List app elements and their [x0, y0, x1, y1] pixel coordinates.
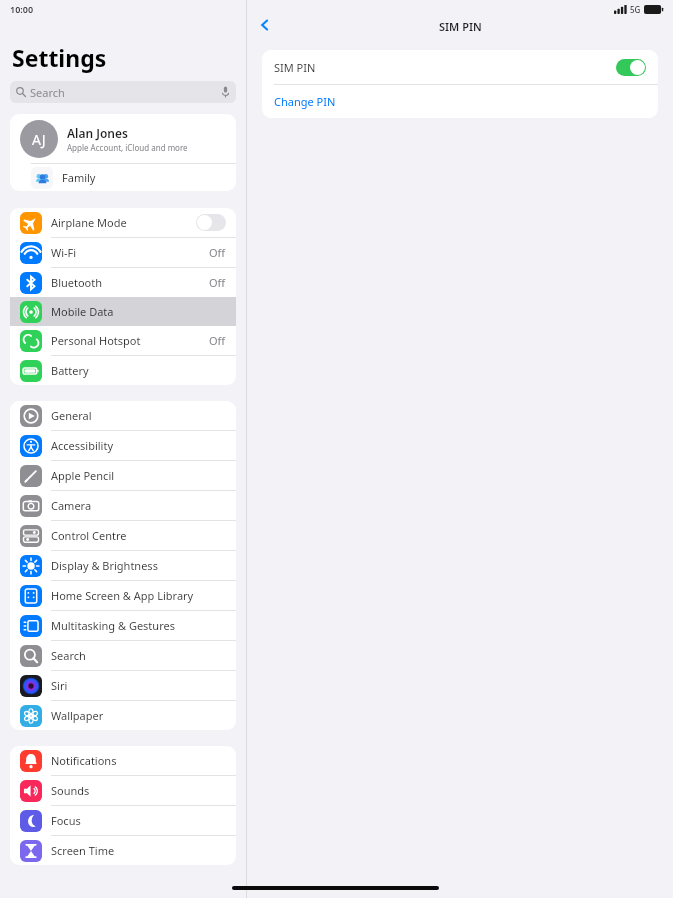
button[interactable]: Search: [10, 641, 236, 670]
button[interactable]: Accessibility: [10, 431, 236, 460]
staticText: 10:00: [10, 3, 34, 15]
button[interactable]: [196, 214, 226, 231]
staticText: Notifications: [51, 753, 117, 768]
staticText: Off: [209, 275, 226, 290]
staticText: Display & Brightness: [51, 558, 158, 573]
button[interactable]: Camera: [10, 491, 236, 520]
staticText: Off: [209, 245, 226, 260]
button[interactable]: Personal Hotspot: [10, 326, 236, 355]
staticText: Search: [51, 648, 86, 663]
button[interactable]: Back: [251, 11, 279, 39]
staticText: Battery: [51, 363, 89, 378]
staticText: Apple Pencil: [51, 468, 115, 483]
staticText: Siri: [51, 678, 68, 693]
button[interactable]: General: [10, 401, 236, 430]
button[interactable]: Multitasking & Gestures: [10, 611, 236, 640]
button[interactable]: Control Centre: [10, 521, 236, 550]
button[interactable]: Airplane Mode: [10, 208, 236, 237]
staticText: Sounds: [51, 783, 90, 798]
button[interactable]: Family: [10, 164, 236, 191]
button[interactable]: Mobile Data: [10, 297, 236, 326]
staticText: Apple Account, iCloud and more: [67, 142, 188, 153]
button[interactable]: Search: [10, 81, 236, 103]
staticText: Bluetooth: [51, 275, 103, 290]
staticText: Alan Jones: [67, 125, 128, 141]
button[interactable]: Wi-Fi: [10, 238, 236, 267]
staticText: Camera: [51, 498, 92, 513]
staticText: SIM PIN: [274, 60, 316, 75]
staticText: Off: [209, 333, 226, 348]
button[interactable]: Display & Brightness: [10, 551, 236, 580]
button[interactable]: Notifications: [10, 746, 236, 775]
staticText: AJ: [32, 130, 46, 149]
staticText: Search: [30, 85, 65, 100]
button[interactable]: SIM PIN: [262, 50, 658, 84]
button[interactable]: Bluetooth: [10, 268, 236, 297]
staticText: Airplane Mode: [51, 215, 127, 230]
button[interactable]: Wallpaper: [10, 701, 236, 730]
button[interactable]: Screen Time: [10, 836, 236, 865]
staticText: Home Screen & App Library: [51, 588, 194, 603]
button[interactable]: Focus: [10, 806, 236, 835]
button[interactable]: Change PIN: [262, 85, 658, 118]
staticText: Family: [62, 170, 96, 185]
staticText: Wallpaper: [51, 708, 104, 723]
staticText: Accessibility: [51, 438, 114, 453]
staticText: Personal Hotspot: [51, 333, 141, 348]
button[interactable]: Sounds: [10, 776, 236, 805]
staticText: Settings: [12, 42, 107, 73]
staticText: SIM PIN: [439, 19, 482, 34]
button[interactable]: Battery: [10, 356, 236, 385]
button[interactable]: Home Screen & App Library: [10, 581, 236, 610]
staticText: Screen Time: [51, 843, 115, 858]
staticText: 5G: [630, 4, 641, 15]
staticText: General: [51, 408, 92, 423]
button[interactable]: AJ: [10, 114, 236, 163]
button[interactable]: [616, 59, 646, 76]
staticText: Mobile Data: [51, 304, 114, 319]
staticText: Wi-Fi: [51, 245, 77, 260]
button[interactable]: Siri: [10, 671, 236, 700]
staticText: Focus: [51, 813, 81, 828]
staticText: Multitasking & Gestures: [51, 618, 175, 633]
button[interactable]: Apple Pencil: [10, 461, 236, 490]
staticText: Change PIN: [274, 94, 336, 109]
staticText: Control Centre: [51, 528, 127, 543]
